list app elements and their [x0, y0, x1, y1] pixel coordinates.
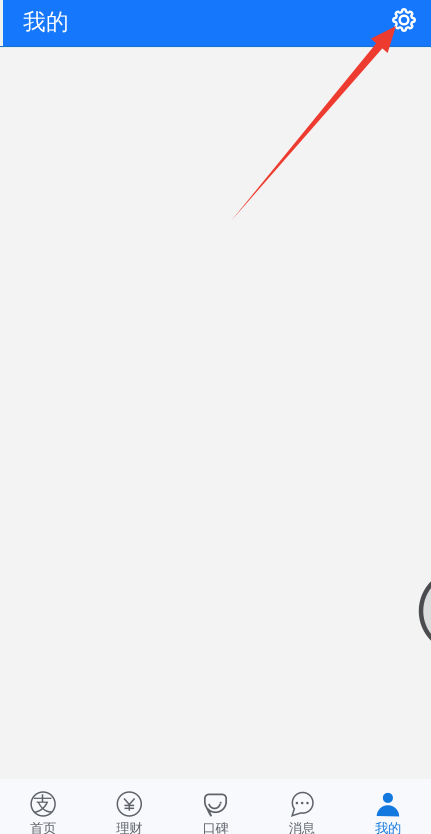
staticText: 我的 [375, 820, 401, 834]
staticText: 我的 [23, 8, 69, 36]
staticText: 理财 [116, 820, 142, 834]
staticText: 支 [33, 792, 53, 816]
button[interactable]: 支 [0, 779, 86, 834]
staticText: 消息 [289, 820, 315, 834]
button[interactable]: Settings [382, 1, 426, 45]
button[interactable]: 我的 [345, 779, 431, 834]
button[interactable]: 口碑 [172, 779, 259, 834]
button[interactable]: 理财 [86, 779, 172, 834]
button[interactable]: 消息 [259, 779, 345, 834]
staticText: 口碑 [202, 820, 228, 834]
staticText: 首页 [30, 820, 56, 834]
button[interactable]: Assistant [421, 571, 431, 651]
